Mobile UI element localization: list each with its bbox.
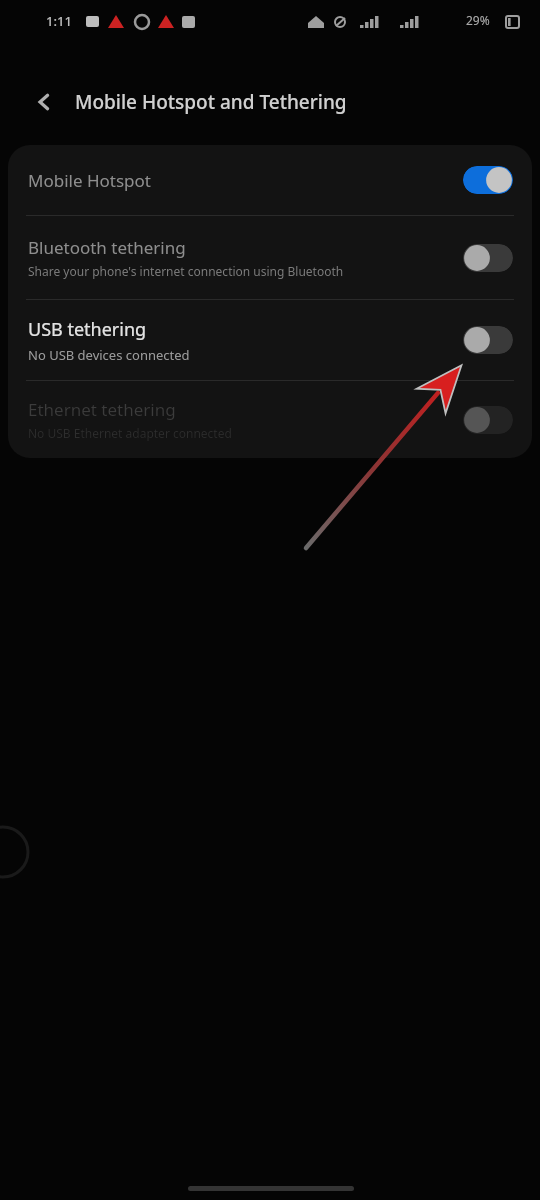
button[interactable]: Toggle off xyxy=(463,244,513,272)
staticText: 1:11 xyxy=(46,12,72,30)
button[interactable]: USB tethering xyxy=(8,300,532,380)
staticText: Share your phone's internet connection u… xyxy=(28,263,344,279)
button[interactable]: Mobile Hotspot xyxy=(8,145,532,215)
staticText: Mobile Hotspot and Tethering xyxy=(75,89,347,115)
button[interactable]: Back xyxy=(22,80,66,124)
staticText: Ethernet tethering xyxy=(28,398,176,421)
staticText: Bluetooth tethering xyxy=(28,236,186,259)
staticText: 29% xyxy=(466,12,490,28)
button[interactable]: Toggle on xyxy=(463,166,513,194)
button[interactable]: Toggle off xyxy=(463,326,513,354)
staticText: No USB Ethernet adapter connected xyxy=(28,425,232,441)
staticText: Mobile Hotspot xyxy=(28,169,151,192)
button[interactable]: Bluetooth tethering xyxy=(8,216,532,299)
staticText: No USB devices connected xyxy=(28,346,190,364)
button[interactable]: Toggle off xyxy=(463,406,513,434)
staticText: USB tethering xyxy=(28,317,147,342)
button[interactable]: Ethernet tethering xyxy=(8,381,532,458)
